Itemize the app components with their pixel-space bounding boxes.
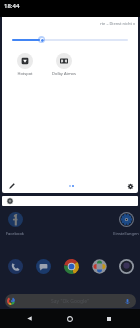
button[interactable]: Camera [117, 257, 135, 275]
button[interactable]: Back [19, 309, 39, 328]
button[interactable]: Recents [99, 309, 119, 328]
button[interactable]: Einstellungen [110, 212, 140, 236]
staticText: Facebook [0, 231, 31, 236]
button[interactable]: Dolby Atmos [46, 53, 82, 76]
button[interactable]: Say "Ok Google" [5, 294, 136, 308]
staticText: Say "Ok Google" [51, 298, 90, 305]
button[interactable]: Messages [34, 257, 52, 275]
button[interactable]: Phone [6, 257, 24, 275]
button[interactable]: Brightness [12, 38, 128, 40]
button[interactable]: Chrome [62, 257, 80, 275]
button[interactable]: Notification settings [5, 196, 15, 206]
button[interactable]: Settings [124, 180, 136, 192]
staticText: Dolby Atmos [46, 71, 82, 76]
button[interactable]: Photos [90, 257, 108, 275]
button[interactable]: Hotspot [7, 53, 43, 76]
button[interactable]: Home [60, 309, 80, 328]
button[interactable]: Edit [6, 180, 18, 192]
staticText: 18:44 [4, 2, 20, 10]
staticText: Hotspot [7, 71, 43, 76]
staticText: rte – Dienst nicht v [100, 21, 135, 26]
staticText: Einstellungen [110, 231, 140, 236]
button[interactable]: Facebook [0, 212, 31, 236]
